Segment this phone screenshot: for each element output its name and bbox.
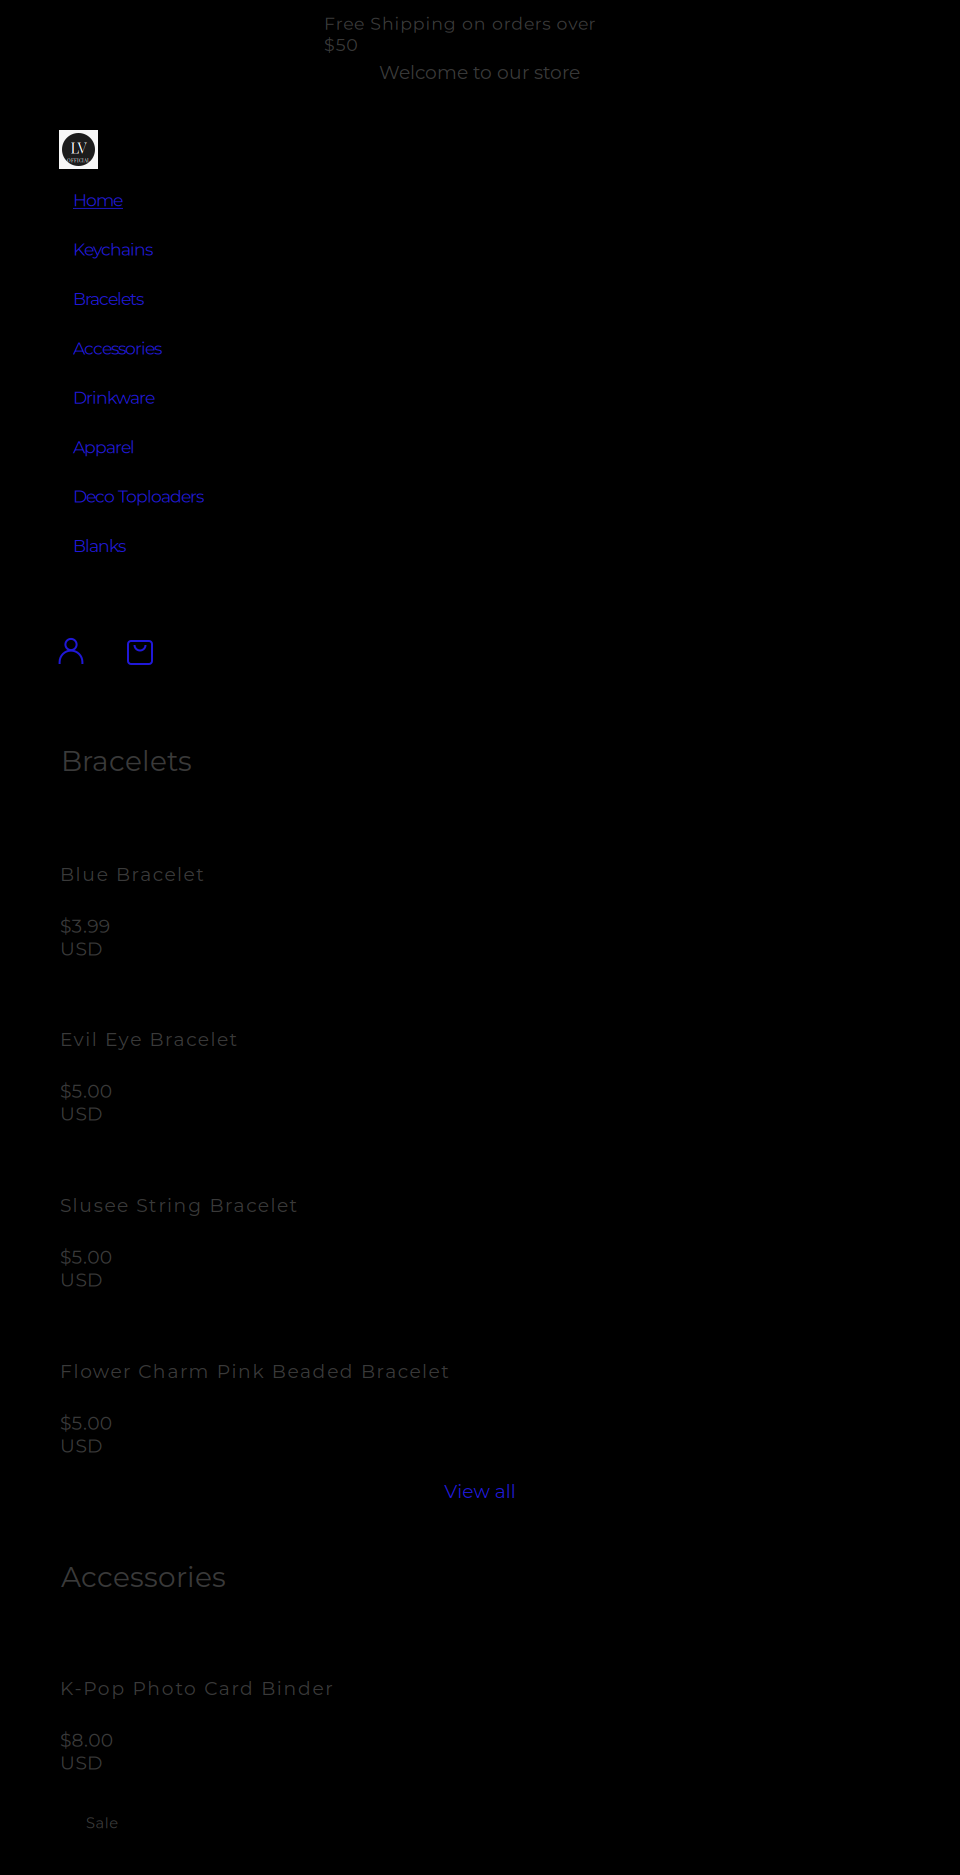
staticText: Bracelets	[61, 744, 192, 778]
staticText: Flower Charm Pink Beaded Bracelet	[60, 1360, 449, 1383]
button[interactable]: Blue Bracelet	[60, 863, 900, 960]
staticText: USD	[60, 937, 102, 960]
staticText: USD	[60, 1102, 102, 1125]
staticText: K-Pop Photo Card Binder	[60, 1677, 332, 1700]
staticText: Sale	[86, 1814, 118, 1832]
staticText: Home	[73, 189, 123, 210]
staticText: $5.00	[60, 1412, 112, 1435]
staticText: Blue Bracelet	[60, 863, 204, 886]
staticText: LV	[70, 137, 86, 157]
button[interactable]: View all	[0, 1480, 960, 1503]
staticText: Slusee String Bracelet	[60, 1194, 298, 1217]
button[interactable]: Evil Eye Bracelet	[60, 1028, 900, 1125]
staticText: USD	[60, 1268, 102, 1291]
staticText: $8.00	[60, 1729, 113, 1752]
staticText: Blanks	[73, 535, 126, 556]
button[interactable]: LV Official home	[59, 130, 98, 169]
staticText: Evil Eye Bracelet	[60, 1028, 238, 1051]
staticText: Accessories	[73, 338, 162, 359]
button[interactable]: Log in	[49, 629, 93, 673]
staticText: Accessories	[61, 1560, 226, 1594]
staticText: $5.00	[60, 1080, 112, 1103]
button[interactable]: Deco Toploaders	[73, 479, 204, 513]
staticText: View all	[444, 1480, 516, 1503]
staticText: Apparel	[73, 436, 135, 457]
button[interactable]: Blanks	[73, 529, 126, 563]
button[interactable]: Apparel	[73, 430, 135, 464]
staticText: USD	[60, 1751, 102, 1774]
button[interactable]: Slusee String Bracelet	[60, 1194, 900, 1291]
button[interactable]: K-Pop Photo Card Binder	[60, 1677, 900, 1774]
button[interactable]: Home	[73, 183, 123, 217]
button[interactable]: Bracelets	[73, 282, 144, 316]
staticText: $3.99	[60, 915, 110, 938]
button[interactable]: Keychains	[73, 232, 153, 266]
staticText: OFFICIAL	[67, 157, 90, 163]
button[interactable]: Drinkware	[73, 381, 155, 415]
button[interactable]: Flower Charm Pink Beaded Bracelet	[60, 1360, 900, 1457]
staticText: $5.00	[60, 1246, 112, 1269]
staticText: USD	[60, 1434, 102, 1457]
button[interactable]: Cart	[118, 629, 162, 673]
staticText: Keychains	[73, 239, 153, 260]
staticText: Drinkware	[73, 387, 155, 408]
staticText: Welcome to our store	[379, 61, 580, 84]
staticText: Free Shipping on orders over $50	[324, 13, 635, 34]
staticText: Bracelets	[73, 288, 144, 309]
staticText: Deco Toploaders	[73, 486, 204, 507]
button[interactable]: Accessories	[73, 331, 162, 365]
